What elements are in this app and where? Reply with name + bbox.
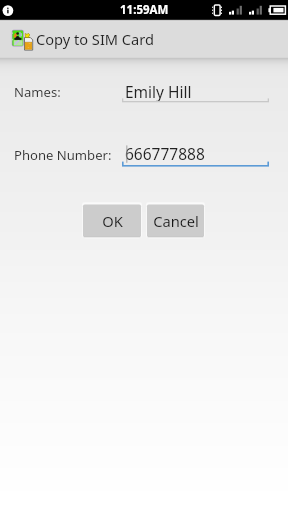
button[interactable]: OK — [83, 203, 141, 238]
staticText: Emily Hill — [125, 81, 192, 102]
staticText: Phone Number: — [14, 146, 112, 164]
staticText: 11:59AM — [120, 2, 169, 18]
button[interactable]: 666777888 — [122, 143, 269, 169]
button[interactable]: Copy to SIM card — [0, 20, 166, 58]
button[interactable]: Emily Hill — [122, 79, 269, 105]
staticText: OK — [102, 211, 123, 231]
button[interactable]: Cancel — [147, 203, 204, 238]
other: Copy to SIM card — [12, 28, 33, 52]
staticText: Cancel — [153, 211, 199, 231]
other: Notification — [1, 3, 15, 17]
staticText: 666777888 — [125, 143, 205, 164]
staticText: Names: — [14, 83, 61, 101]
staticText: Copy to SIM Card — [36, 29, 154, 49]
